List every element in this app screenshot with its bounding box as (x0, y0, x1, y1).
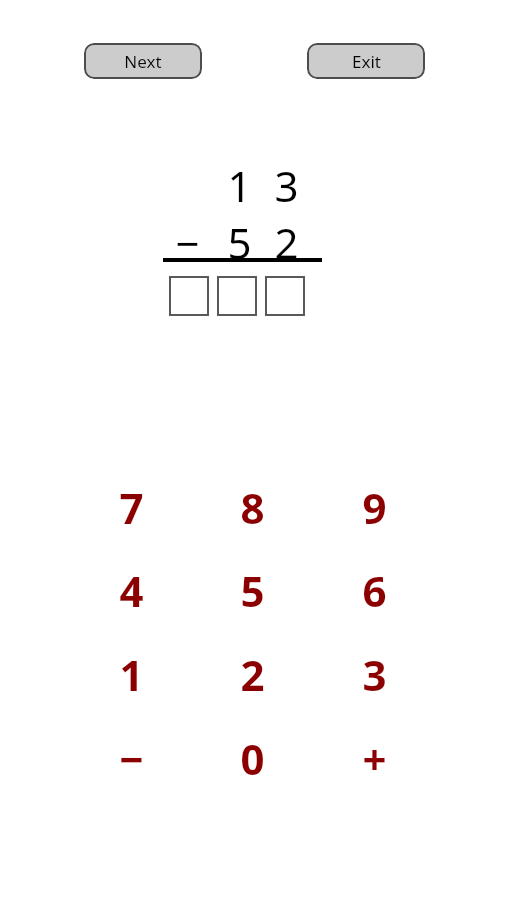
button[interactable]: 7 (81, 467, 181, 547)
staticText: Next (124, 50, 162, 73)
staticText: 2 (240, 646, 265, 703)
staticText: + (362, 730, 387, 787)
button[interactable]: 3 (324, 634, 424, 714)
staticText: 4 (119, 562, 144, 619)
button[interactable]: + (324, 718, 424, 798)
staticText: 1 (119, 646, 144, 703)
button[interactable]: 8 (202, 467, 302, 547)
button[interactable]: Next (84, 43, 202, 79)
button[interactable]: − (81, 718, 181, 798)
button[interactable]: 1 (81, 634, 181, 714)
staticText: − (119, 730, 144, 787)
staticText: 3 (362, 646, 387, 703)
button[interactable]: Answer digit 3 (265, 276, 305, 316)
button[interactable]: 9 (324, 467, 424, 547)
button[interactable]: 0 (202, 718, 302, 798)
staticText: 6 (362, 562, 387, 619)
staticText: 5 (240, 562, 265, 619)
button[interactable]: Answer digit 1 (169, 276, 209, 316)
button[interactable]: 2 (202, 634, 302, 714)
button[interactable]: Answer digit 2 (217, 276, 257, 316)
staticText: 0 (240, 730, 265, 787)
staticText: 5 (227, 214, 252, 271)
button[interactable]: 5 (202, 550, 302, 630)
staticText: − (175, 214, 200, 271)
button[interactable]: 4 (81, 550, 181, 630)
staticText: Exit (352, 50, 381, 73)
staticText: 2 (274, 214, 299, 271)
staticText: 7 (119, 479, 144, 536)
staticText: 9 (362, 479, 387, 536)
button[interactable]: Exit (307, 43, 425, 79)
staticText: 1 (227, 157, 252, 214)
staticText: 8 (240, 479, 265, 536)
button[interactable]: 6 (324, 550, 424, 630)
staticText: 3 (274, 157, 299, 214)
